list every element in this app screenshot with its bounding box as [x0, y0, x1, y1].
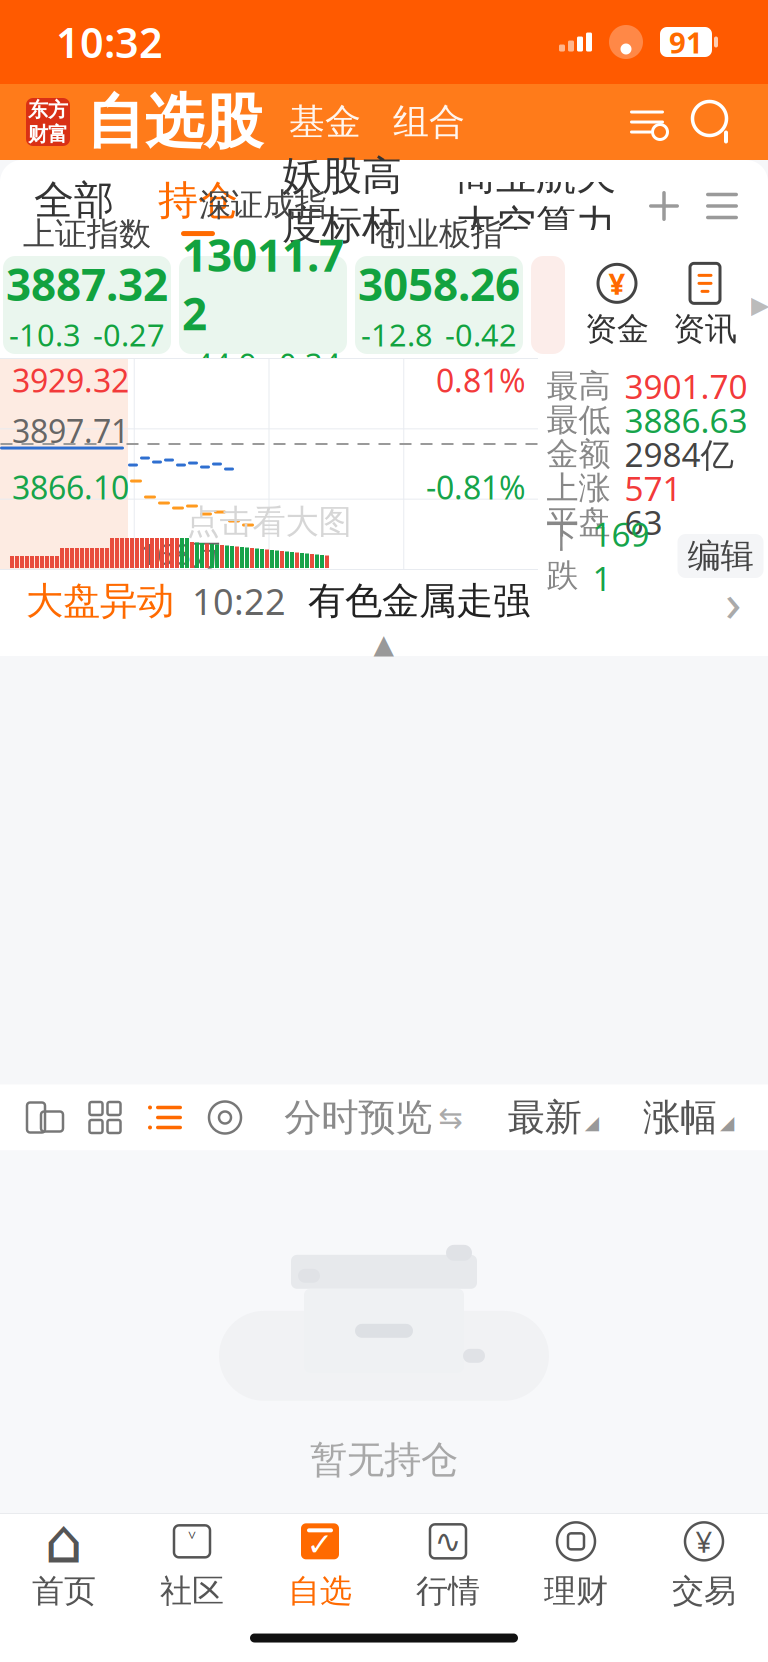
staticText: 上涨 [546, 468, 610, 508]
staticText: 3866.10 [12, 466, 129, 508]
button[interactable]: 搜索 [684, 93, 742, 151]
staticText: -0.42% [445, 314, 517, 395]
button[interactable]: 上证指数 [3, 256, 171, 354]
staticText: 资金 [585, 309, 649, 349]
button[interactable]: 商业航天太空算力 [436, 182, 636, 230]
staticText: 91 [669, 22, 703, 61]
staticText: -0.81% [426, 466, 526, 508]
button[interactable]: 基金 [279, 92, 371, 152]
staticText: ▶ [751, 291, 768, 319]
staticText: 涨幅 [643, 1095, 717, 1140]
staticText: 168万 [140, 534, 220, 573]
button[interactable]: 最新 [500, 1095, 607, 1140]
staticText: 点击看大图 [186, 501, 351, 542]
staticText: 创业板指 [375, 214, 503, 254]
staticText: 基金 [289, 100, 361, 144]
button[interactable]: 更多指数 [531, 256, 565, 354]
button[interactable]: ˅ [128, 1514, 256, 1614]
button[interactable]: 创业板指 [355, 256, 523, 354]
staticText: 理财 [544, 1571, 608, 1611]
staticText: 商业航天太空算力 [456, 151, 616, 250]
staticText: › [725, 566, 742, 636]
staticText: ◢ [720, 1112, 734, 1133]
staticText: 571 [624, 466, 681, 510]
staticText: 下跌 [546, 517, 578, 595]
button[interactable]: 资讯 [661, 256, 749, 354]
staticText: 分时预览 [284, 1095, 432, 1140]
staticText: 10:22 [192, 577, 286, 625]
staticText: 行情 [416, 1571, 480, 1611]
staticText: 首页 [32, 1571, 96, 1611]
button[interactable]: 编辑 [677, 534, 763, 578]
button[interactable]: 全部分组 [698, 182, 746, 230]
button[interactable]: ¥ [640, 1514, 768, 1614]
staticText: ¥ [608, 264, 625, 303]
button[interactable]: 分时预览 [276, 1095, 471, 1140]
button[interactable]: 持仓 [152, 176, 244, 236]
staticText: ⌂ [44, 1506, 83, 1576]
staticText: 暂无持仓 [310, 1437, 458, 1483]
staticText: 妖股高度标杆 [282, 151, 402, 250]
button[interactable]: 更多 [749, 256, 768, 354]
button[interactable]: 妖股高度标杆 [276, 151, 408, 261]
staticText: 金额 [546, 434, 610, 474]
staticText: 1691 [592, 512, 649, 600]
staticText: 10:32 [56, 15, 163, 69]
staticText: 自选 [288, 1571, 352, 1611]
staticText: ✓ [306, 1526, 333, 1562]
staticText: 3886.63 [624, 398, 747, 442]
staticText: 最低 [546, 400, 610, 440]
staticText: 13011.72 [182, 225, 344, 342]
button[interactable]: 添加分组 [640, 182, 688, 230]
staticText: 社区 [160, 1571, 224, 1611]
staticText: 63 [624, 500, 662, 544]
staticText: -0.34% [269, 343, 341, 425]
staticText: 上证指数 [23, 214, 151, 254]
staticText: 3929.32 [12, 359, 129, 401]
staticText: ▲ [373, 629, 394, 659]
button[interactable]: 网格视图 [82, 1094, 128, 1140]
button[interactable]: 深证成指 [179, 256, 347, 354]
staticText: 最高 [546, 366, 610, 406]
button[interactable]: ✓ [256, 1514, 384, 1614]
staticText: 东方 [28, 97, 68, 122]
staticText: 财富 [28, 122, 68, 147]
button[interactable]: 列表设置 [618, 93, 676, 151]
staticText: 持仓 [158, 176, 238, 225]
staticText: 2984亿 [624, 432, 733, 476]
staticText: 3887.32 [6, 255, 168, 313]
staticText: 资讯 [673, 309, 737, 349]
staticText: 全部 [34, 176, 114, 225]
staticText: 有色金属走强 [308, 578, 530, 624]
staticText: 交易 [672, 1571, 736, 1611]
staticText: ◢ [585, 1112, 599, 1133]
staticText: -0.27% [93, 314, 165, 395]
button[interactable]: 涨幅 [635, 1095, 742, 1140]
staticText: 3901.70 [624, 364, 747, 408]
button[interactable]: 设置视图 [202, 1094, 248, 1140]
staticText: 组合 [393, 100, 465, 144]
button[interactable]: 组合 [383, 92, 475, 152]
staticText: ⇆ [438, 1101, 463, 1134]
staticText: ¥ [695, 1522, 712, 1561]
button[interactable]: ∿ [384, 1514, 512, 1614]
staticText: 编辑 [687, 535, 753, 576]
staticText: ∿ [434, 1523, 461, 1559]
button[interactable]: 视图一 [22, 1094, 68, 1140]
staticText: 最新 [508, 1095, 582, 1140]
staticText: -44.98 [185, 343, 257, 425]
staticText: 0.81% [436, 359, 526, 401]
button[interactable]: 大盘异动 [0, 570, 768, 632]
button[interactable]: 全部 [28, 176, 120, 236]
button[interactable]: 理财 [512, 1514, 640, 1614]
staticText: 大盘异动 [26, 578, 174, 624]
staticText: -10.39 [9, 314, 81, 395]
button[interactable]: ⌂ [0, 1514, 128, 1614]
staticText: 3058.26 [358, 255, 520, 313]
button[interactable]: 列表视图 [142, 1094, 188, 1140]
button[interactable]: ¥ [573, 256, 661, 354]
staticText: ˅ [188, 1524, 196, 1563]
button[interactable]: 东方财富 [26, 98, 70, 146]
button[interactable]: 收起 [349, 632, 419, 656]
staticText: -12.89 [361, 314, 433, 395]
